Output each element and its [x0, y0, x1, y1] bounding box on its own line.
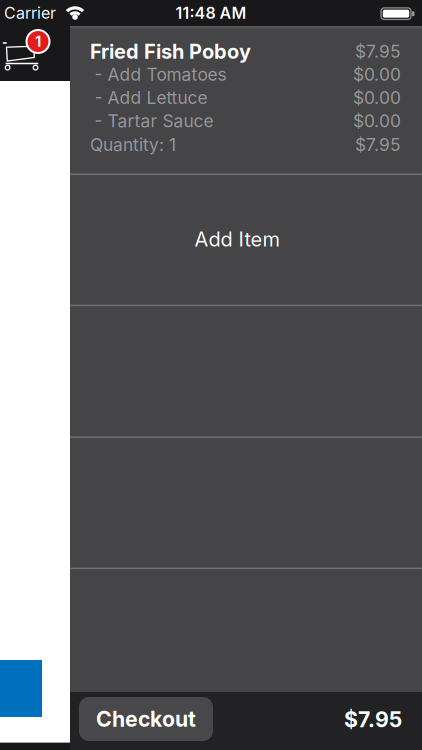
staticText: 11:48 AM [175, 4, 246, 22]
staticText: Checkout [96, 706, 196, 732]
button[interactable]: Checkout [79, 697, 213, 741]
staticText: Quantity: 1 [90, 134, 176, 155]
staticText: $0.00 [353, 111, 401, 131]
staticText: - Add Tomatoes [94, 64, 226, 85]
staticText: - Add Lettuce [94, 87, 207, 108]
staticText: Fried Fish Poboy [90, 40, 251, 63]
staticText: Carrier [4, 4, 56, 22]
staticText: $7.95 [344, 707, 402, 732]
staticText: 1 [35, 33, 41, 50]
staticText: $7.95 [355, 41, 401, 62]
staticText: $0.00 [353, 64, 401, 85]
staticText: - Tartar Sauce [94, 111, 213, 131]
staticText: $0.00 [353, 87, 401, 108]
button[interactable]: Cart, 1 item [0, 26, 70, 81]
staticText: Add Item [194, 227, 279, 251]
button[interactable]: Fried Fish Poboy [70, 26, 422, 174]
staticText: $7.95 [355, 134, 401, 155]
button[interactable]: Add Item [70, 174, 422, 305]
